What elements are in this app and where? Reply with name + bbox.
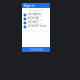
button[interactable]: Alex Morgan	[22, 17, 50, 21]
staticText: alex@example.com	[28, 19, 42, 21]
button[interactable]: Continue	[22, 47, 50, 52]
button[interactable]: Jane Appleseed	[22, 13, 50, 17]
staticText: Use another account	[28, 25, 47, 27]
staticText: jane@example.com	[28, 15, 42, 17]
staticText: Sign in	[23, 4, 34, 7]
button[interactable]: Use another account	[22, 25, 50, 29]
button[interactable]: Sam Rivera	[22, 21, 50, 25]
staticText: Jane Appleseed	[28, 13, 41, 15]
staticText: Alex Morgan	[28, 17, 39, 19]
staticText: Continue	[29, 48, 42, 51]
staticText: Choose an account	[28, 9, 43, 12]
staticText: sam@example.com	[28, 23, 42, 25]
staticText: Sam Rivera	[28, 21, 38, 23]
